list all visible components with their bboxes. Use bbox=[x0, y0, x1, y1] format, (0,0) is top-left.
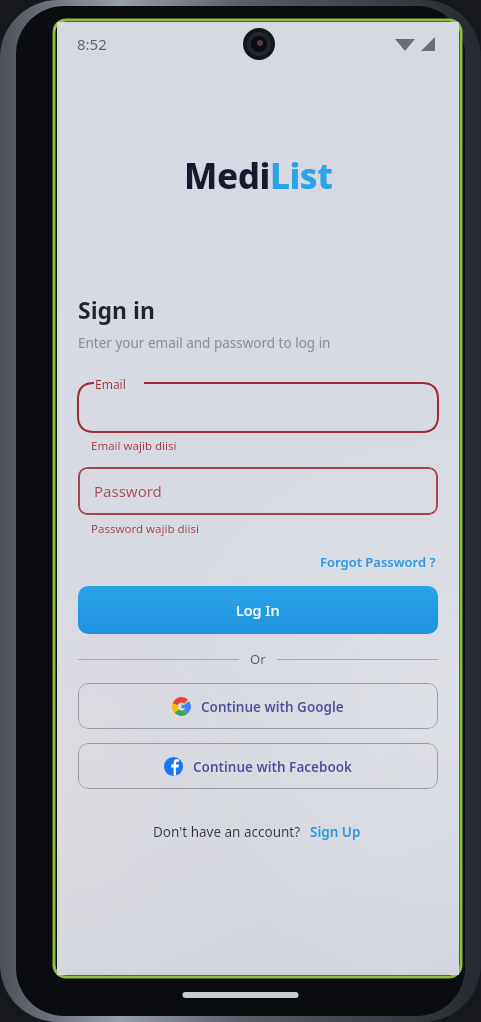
button[interactable]: Password bbox=[78, 467, 438, 515]
staticText: Email bbox=[95, 376, 126, 392]
staticText: Enter your email and password to log in bbox=[78, 334, 331, 352]
button[interactable]: Email bbox=[78, 377, 438, 432]
staticText: Log In bbox=[236, 600, 280, 620]
button[interactable]: Forgot Password ? bbox=[318, 551, 438, 573]
button[interactable]: Continue with Facebook bbox=[78, 743, 438, 789]
button[interactable]: Continue with Google bbox=[78, 683, 438, 729]
button[interactable]: Sign Up bbox=[308, 821, 363, 843]
staticText: Continue with Google bbox=[201, 698, 344, 716]
staticText: Password bbox=[94, 481, 162, 501]
staticText: Email wajib diisi bbox=[91, 438, 177, 454]
staticText: List bbox=[270, 152, 333, 200]
button[interactable]: Log In bbox=[78, 586, 438, 634]
staticText: Medi bbox=[184, 152, 270, 200]
staticText: Password wajib diisi bbox=[91, 521, 199, 537]
staticText: Sign in bbox=[78, 294, 155, 325]
staticText: Forgot Password ? bbox=[320, 553, 436, 571]
staticText: Don't have an account? bbox=[153, 823, 301, 841]
staticText: Or bbox=[250, 650, 266, 668]
staticText: Sign Up bbox=[310, 823, 361, 841]
staticText: Continue with Facebook bbox=[193, 758, 353, 776]
staticText: 8:52 bbox=[77, 34, 107, 54]
